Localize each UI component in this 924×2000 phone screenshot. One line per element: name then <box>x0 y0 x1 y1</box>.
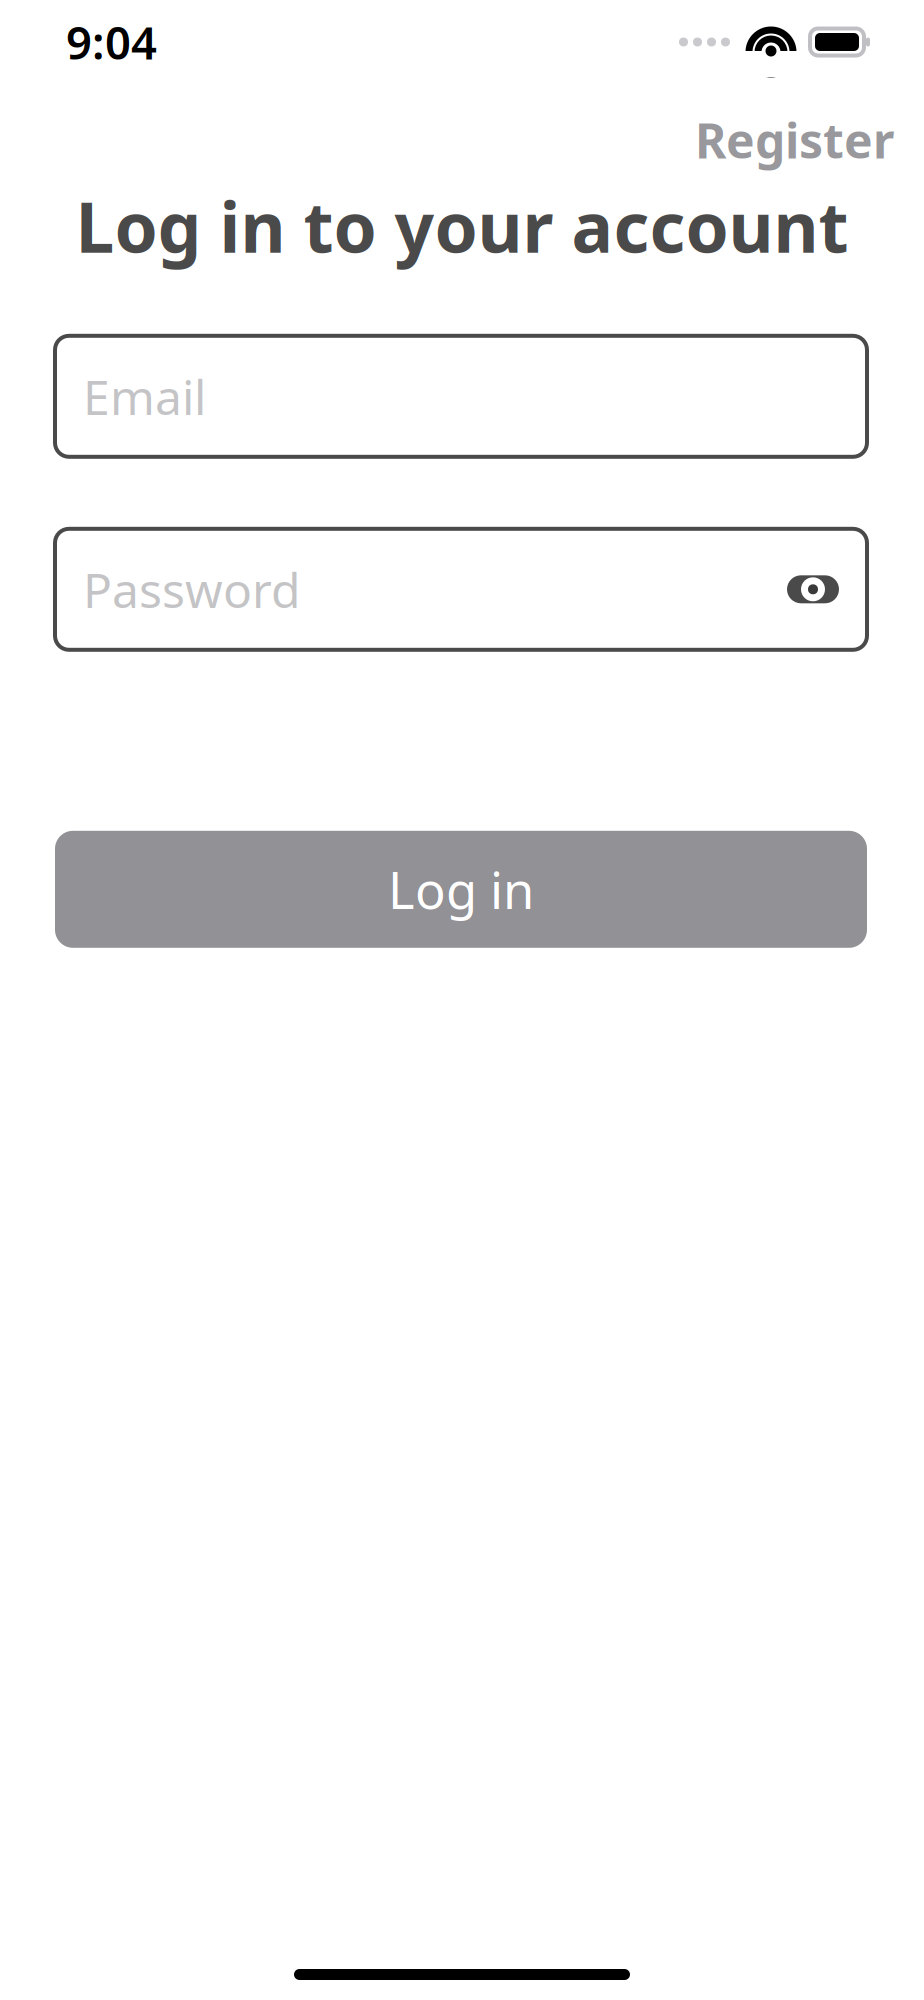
staticText: Log in <box>388 856 534 923</box>
staticText: Register <box>695 108 894 172</box>
button[interactable]: Show password <box>785 561 841 617</box>
staticText: Password <box>83 557 301 621</box>
staticText: 9:04 <box>66 12 157 72</box>
staticText: Log in to your account <box>75 180 848 272</box>
button[interactable]: Log in <box>55 831 867 948</box>
staticText: Email <box>83 364 206 428</box>
button[interactable]: Register <box>695 108 894 172</box>
